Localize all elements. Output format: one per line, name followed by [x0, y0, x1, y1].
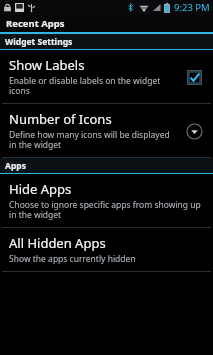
staticText: Show Labels	[9, 56, 85, 74]
staticText: Apps	[5, 160, 26, 172]
staticText: Widget Settings	[5, 36, 73, 48]
staticText: Define how many icons will be displayed …	[9, 129, 177, 151]
button[interactable]: Show Labels	[0, 50, 213, 103]
staticText: All Hidden Apps	[9, 234, 106, 252]
staticText: Choose to ignore specific apps from show…	[9, 199, 207, 221]
button[interactable]: Show Labels toggle	[181, 64, 207, 90]
staticText: Recent Apps	[6, 17, 65, 30]
button[interactable]: Hide Apps	[0, 174, 213, 227]
button[interactable]: All Hidden Apps	[0, 228, 213, 271]
staticText: Enable or disable labels on the widget i…	[9, 75, 177, 97]
staticText: Number of Icons	[9, 110, 112, 128]
staticText: Show the apps currently hidden	[9, 253, 136, 265]
staticText: Hide Apps	[9, 180, 72, 198]
staticText: 9:23 PM	[174, 1, 210, 14]
button[interactable]: Number of Icons	[0, 104, 213, 157]
button[interactable]: Number of icons dropdown	[181, 118, 207, 144]
